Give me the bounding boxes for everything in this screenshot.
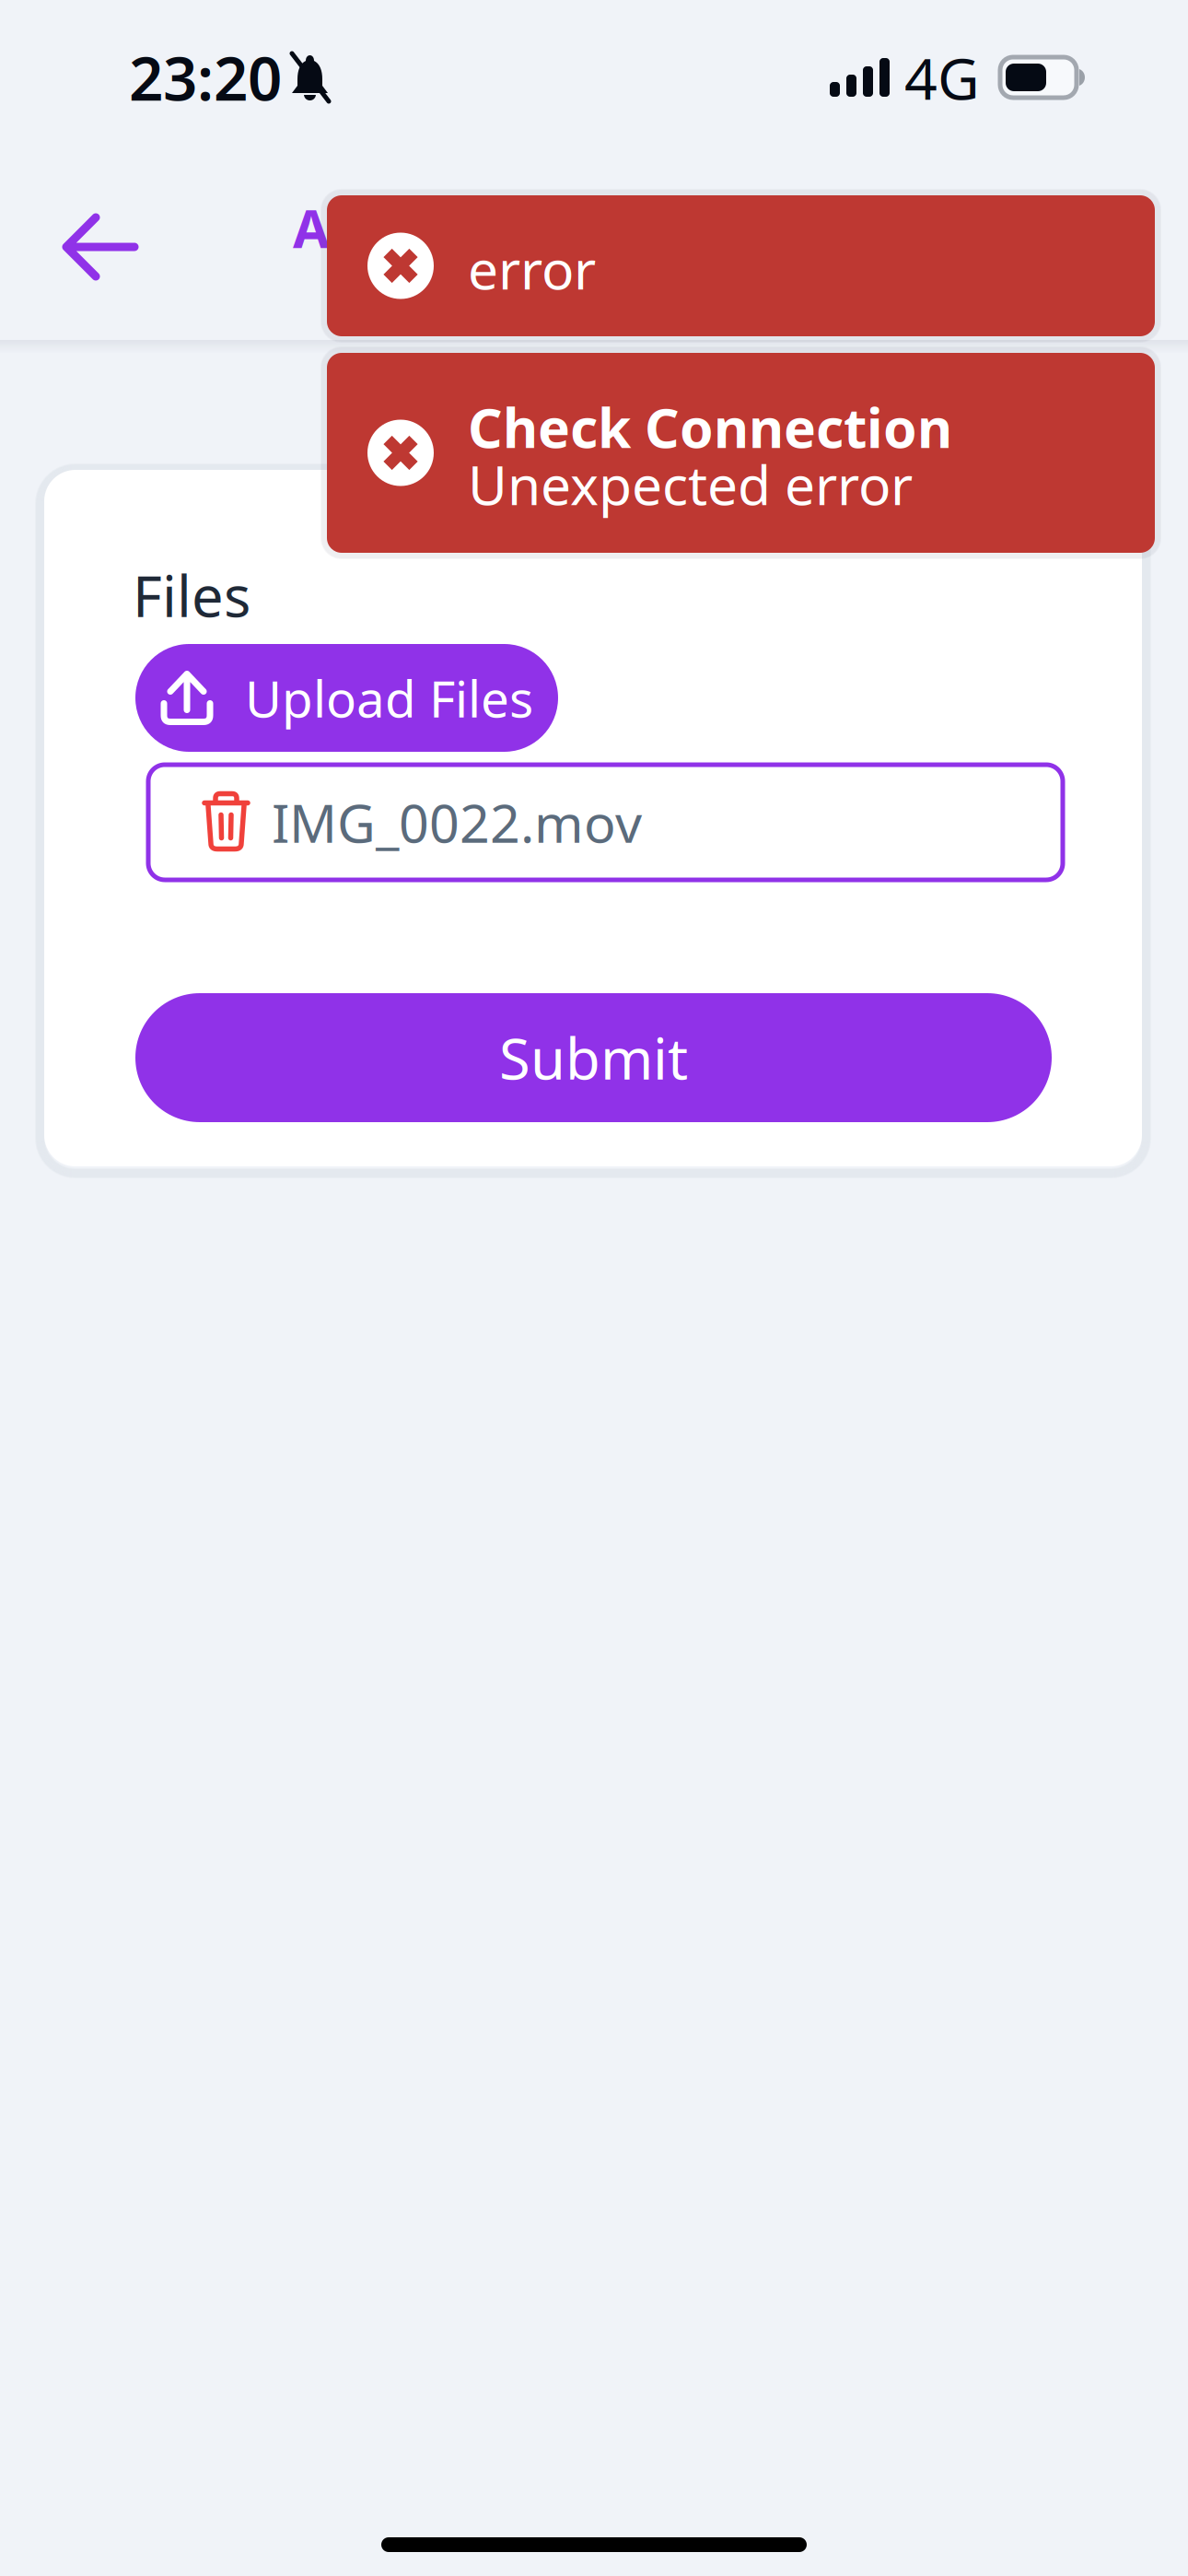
staticText: IMG_0022.mov bbox=[272, 787, 642, 857]
button[interactable]: Upload Files bbox=[135, 644, 558, 752]
button[interactable]: Submit bbox=[135, 993, 1052, 1122]
staticText: 23:20 bbox=[129, 37, 282, 117]
staticText: Unexpected error bbox=[468, 448, 913, 520]
staticText: Add Documents & Files bbox=[293, 192, 895, 263]
button[interactable]: IMG_0022.mov bbox=[148, 765, 1063, 880]
staticText: Upload Files bbox=[245, 664, 533, 731]
button[interactable]: Back bbox=[0, 155, 175, 339]
staticText: error bbox=[468, 233, 596, 304]
staticText: Files bbox=[133, 558, 250, 633]
staticText: 4G bbox=[904, 39, 980, 116]
staticText: Check Connection bbox=[468, 391, 952, 463]
staticText: Submit bbox=[499, 1020, 688, 1095]
